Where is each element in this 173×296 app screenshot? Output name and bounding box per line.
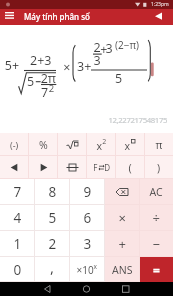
button[interactable] bbox=[0, 205, 35, 231]
button[interactable] bbox=[70, 179, 105, 205]
button[interactable] bbox=[35, 231, 70, 257]
button[interactable] bbox=[116, 133, 145, 156]
button[interactable] bbox=[140, 179, 173, 205]
button[interactable] bbox=[0, 9, 16, 25]
button[interactable] bbox=[70, 257, 105, 282]
button[interactable] bbox=[58, 133, 87, 156]
button[interactable] bbox=[87, 133, 116, 156]
button[interactable] bbox=[70, 231, 105, 257]
button[interactable] bbox=[116, 156, 145, 179]
button[interactable] bbox=[105, 179, 140, 205]
button[interactable] bbox=[35, 179, 70, 205]
button[interactable] bbox=[145, 156, 173, 179]
button[interactable] bbox=[70, 205, 105, 231]
button[interactable] bbox=[105, 205, 140, 231]
button[interactable] bbox=[140, 257, 173, 282]
button[interactable] bbox=[29, 133, 58, 156]
button[interactable] bbox=[140, 205, 173, 231]
button[interactable] bbox=[57, 282, 115, 296]
button[interactable] bbox=[0, 156, 29, 179]
button[interactable] bbox=[140, 231, 173, 257]
button[interactable] bbox=[87, 156, 116, 179]
button[interactable] bbox=[0, 257, 35, 282]
button[interactable] bbox=[29, 156, 58, 179]
button[interactable] bbox=[105, 231, 140, 257]
button[interactable] bbox=[35, 205, 70, 231]
button[interactable] bbox=[0, 282, 57, 296]
button[interactable] bbox=[115, 282, 173, 296]
button[interactable] bbox=[105, 257, 140, 282]
button[interactable] bbox=[35, 257, 70, 282]
button[interactable] bbox=[0, 179, 35, 205]
button[interactable] bbox=[0, 231, 35, 257]
button[interactable] bbox=[145, 133, 173, 156]
button[interactable] bbox=[0, 133, 29, 156]
button[interactable] bbox=[58, 156, 87, 179]
